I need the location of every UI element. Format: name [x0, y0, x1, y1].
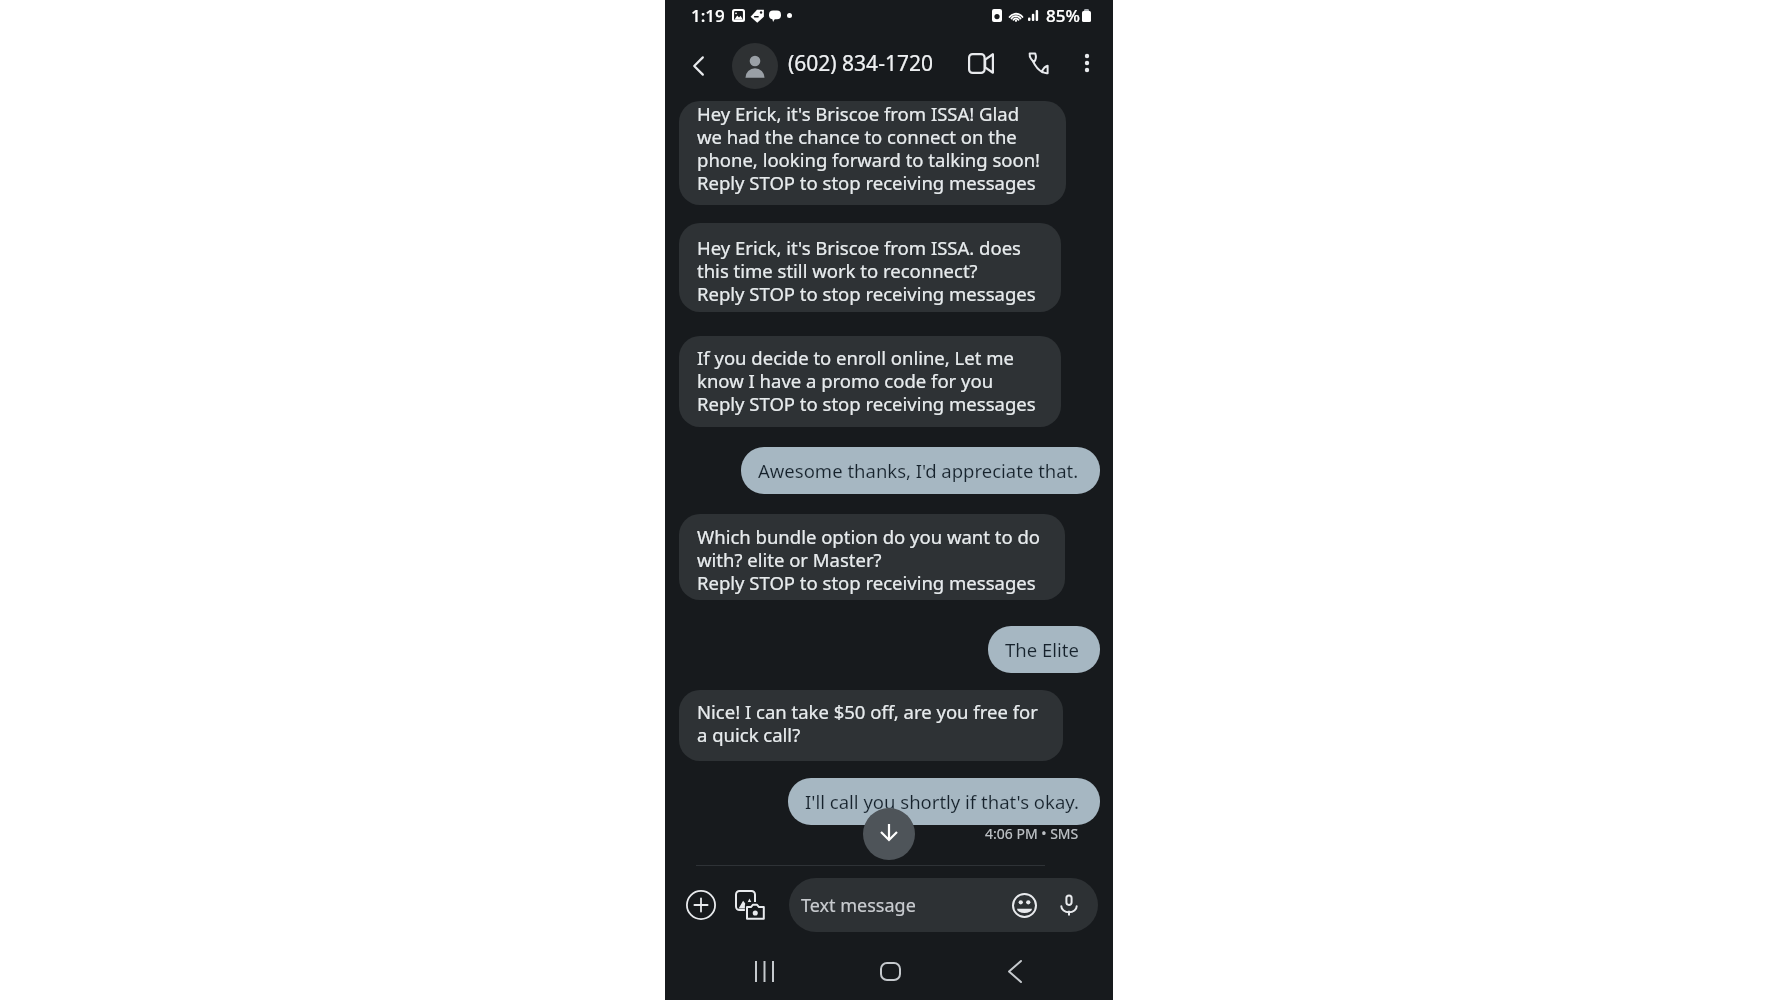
- staticText: If you decide to enroll online, Let me k…: [697, 345, 1036, 416]
- staticText: Hey Erick, it's Briscoe from ISSA! Glad …: [697, 101, 1041, 195]
- button[interactable]: Call: [1016, 42, 1058, 84]
- button[interactable]: Awesome thanks, I'd appreciate that.: [741, 447, 1100, 494]
- staticText: Which bundle option do you want to do wi…: [697, 524, 1040, 595]
- staticText: Nice! I can take $50 off, are you free f…: [697, 699, 1038, 747]
- staticText: 1:19: [691, 4, 725, 27]
- button[interactable]: Back: [679, 46, 719, 86]
- staticText: The Elite: [1005, 637, 1079, 662]
- button[interactable]: If you decide to enroll online, Let me k…: [679, 336, 1061, 427]
- staticText: Text message: [801, 893, 916, 918]
- button[interactable]: Hey Erick, it's Briscoe from ISSA. does …: [679, 223, 1061, 312]
- button[interactable]: More options: [1066, 42, 1108, 84]
- button[interactable]: Recent apps: [736, 943, 792, 999]
- button[interactable]: Hey Erick, it's Briscoe from ISSA! Glad …: [679, 101, 1066, 205]
- button[interactable]: Text message: [789, 878, 1098, 932]
- staticText: I'll call you shortly if that's okay.: [805, 789, 1079, 814]
- button[interactable]: Emoji: [1008, 889, 1040, 921]
- button[interactable]: The Elite: [988, 626, 1100, 673]
- staticText: 85%: [1046, 4, 1080, 27]
- button[interactable]: Which bundle option do you want to do wi…: [679, 514, 1065, 600]
- staticText: 4:06 PM • SMS: [985, 824, 1079, 843]
- staticText: Hey Erick, it's Briscoe from ISSA. does …: [697, 235, 1036, 306]
- staticText: (602) 834-1720: [788, 49, 933, 78]
- button[interactable]: Back: [987, 943, 1043, 999]
- button[interactable]: I'll call you shortly if that's okay.: [788, 778, 1100, 825]
- staticText: Awesome thanks, I'd appreciate that.: [758, 458, 1079, 483]
- button[interactable]: Contact details: [732, 43, 778, 89]
- button[interactable]: Voice input: [1053, 889, 1085, 921]
- button[interactable]: Nice! I can take $50 off, are you free f…: [679, 690, 1063, 761]
- button[interactable]: Video call: [960, 42, 1002, 84]
- button[interactable]: Camera and gallery: [732, 887, 768, 923]
- button[interactable]: Add attachment: [683, 887, 719, 923]
- button[interactable]: Home: [862, 943, 918, 999]
- button[interactable]: Scroll to bottom: [863, 808, 915, 860]
